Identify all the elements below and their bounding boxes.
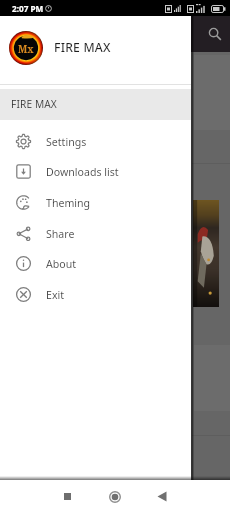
staticText: Settings xyxy=(46,135,87,149)
button[interactable]: FIRE MAX xyxy=(0,89,191,120)
staticText: Theming xyxy=(46,196,91,210)
button[interactable]: Share xyxy=(0,218,191,249)
button[interactable]: Downloads list xyxy=(0,156,191,187)
staticText: Exit xyxy=(46,288,65,302)
button[interactable]: Settings xyxy=(0,126,191,157)
button[interactable]: Back xyxy=(157,491,168,502)
staticText: Downloads list xyxy=(46,165,119,179)
staticText: Share xyxy=(46,227,75,241)
button[interactable]: About xyxy=(0,248,191,279)
staticText: About xyxy=(46,257,77,271)
button[interactable]: Search xyxy=(202,21,228,47)
button[interactable]: Home xyxy=(109,491,121,503)
staticText: FIRE MAX xyxy=(54,39,111,56)
button[interactable]: Theming xyxy=(0,187,191,218)
staticText: 2:07 PM xyxy=(12,3,44,14)
staticText: FIRE MAX xyxy=(11,97,57,111)
staticText: Mx xyxy=(18,43,34,56)
button[interactable]: Exit xyxy=(0,279,191,310)
